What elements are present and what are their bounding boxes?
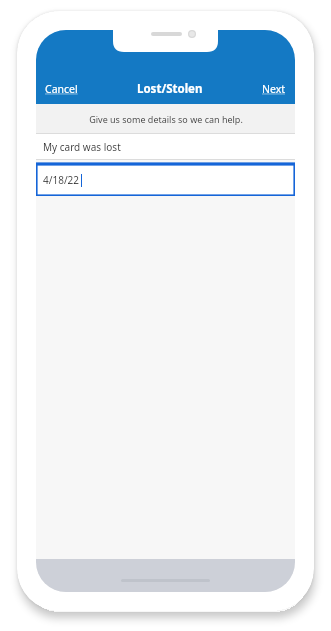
button[interactable]: Cancel [36, 77, 87, 101]
staticText: Lost/Stolen [137, 81, 203, 97]
button[interactable]: My card was lost [36, 134, 295, 159]
staticText: Next [262, 82, 286, 96]
staticText: My card was lost [43, 140, 121, 154]
button[interactable]: Next [253, 77, 295, 101]
staticText: Cancel [45, 82, 78, 96]
staticText: 4/18/22 [43, 173, 80, 187]
button[interactable]: 4/18/22 [36, 164, 295, 196]
staticText: Give us some details so we can help. [89, 113, 243, 125]
